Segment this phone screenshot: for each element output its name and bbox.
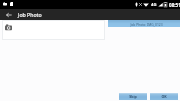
button[interactable] — [2, 20, 105, 40]
button[interactable]: Job Photo: IMG_0123 — [108, 20, 180, 27]
staticText: OK — [161, 94, 167, 99]
staticText: 08:51 — [169, 2, 180, 8]
button[interactable]: OK — [150, 93, 178, 100]
staticText: Skip — [129, 94, 137, 99]
staticText: Job Photo: IMG_0123 — [130, 22, 163, 26]
staticText: Job Photo — [18, 11, 42, 18]
button[interactable]: Back — [0, 9, 17, 20]
staticText: 4G — [151, 2, 157, 8]
button[interactable]: Skip — [119, 93, 147, 100]
